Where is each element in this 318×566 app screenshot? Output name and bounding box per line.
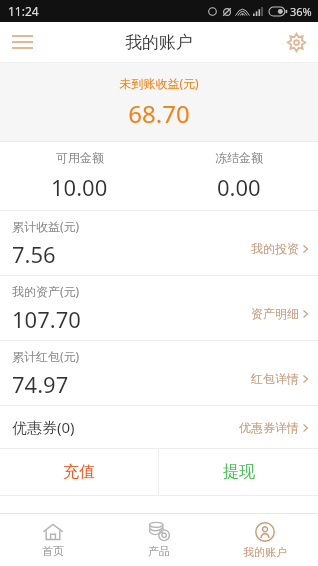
- staticText: 优惠券(0): [12, 417, 75, 437]
- staticText: 36%: [290, 4, 312, 19]
- staticText: 资产明细: [251, 306, 299, 321]
- button[interactable]: 首页: [0, 514, 106, 566]
- staticText: 提现: [223, 462, 255, 482]
- button[interactable]: 累计红包(元): [0, 341, 318, 405]
- staticText: 11:24: [8, 3, 39, 19]
- staticText: 产品: [148, 544, 170, 558]
- staticText: 可用金额: [56, 150, 104, 165]
- button[interactable]: 提现: [159, 449, 318, 495]
- button[interactable]: 冻结金额: [159, 142, 318, 210]
- staticText: 未到账收益(元): [119, 75, 199, 91]
- button[interactable]: Menu: [0, 22, 44, 62]
- staticText: 红包详情: [251, 371, 299, 386]
- button[interactable]: 我的资产(元): [0, 276, 318, 340]
- button[interactable]: Settings: [274, 22, 318, 62]
- staticText: 充值: [63, 462, 95, 482]
- staticText: 我的账户: [125, 32, 193, 53]
- staticText: 107.70: [12, 304, 81, 334]
- staticText: 74.97: [12, 369, 69, 399]
- staticText: 10.00: [51, 172, 108, 202]
- button[interactable]: 充值: [0, 449, 158, 495]
- button[interactable]: 产品: [106, 514, 212, 566]
- staticText: 冻结金额: [215, 150, 263, 165]
- button[interactable]: 优惠券(0): [0, 406, 318, 448]
- staticText: 累计红包(元): [12, 348, 80, 364]
- button[interactable]: 可用金额: [0, 142, 159, 210]
- staticText: 7.56: [12, 239, 56, 269]
- staticText: 优惠券详情: [239, 420, 299, 435]
- button[interactable]: 累计收益(元): [0, 211, 318, 275]
- staticText: 首页: [42, 544, 64, 558]
- staticText: 我的投资: [251, 241, 299, 256]
- staticText: 我的账户: [243, 545, 287, 559]
- staticText: 68.70: [128, 97, 190, 130]
- button[interactable]: 我的账户: [212, 514, 318, 566]
- staticText: 累计收益(元): [12, 218, 80, 234]
- staticText: 0.00: [217, 172, 261, 202]
- staticText: 我的资产(元): [12, 283, 80, 299]
